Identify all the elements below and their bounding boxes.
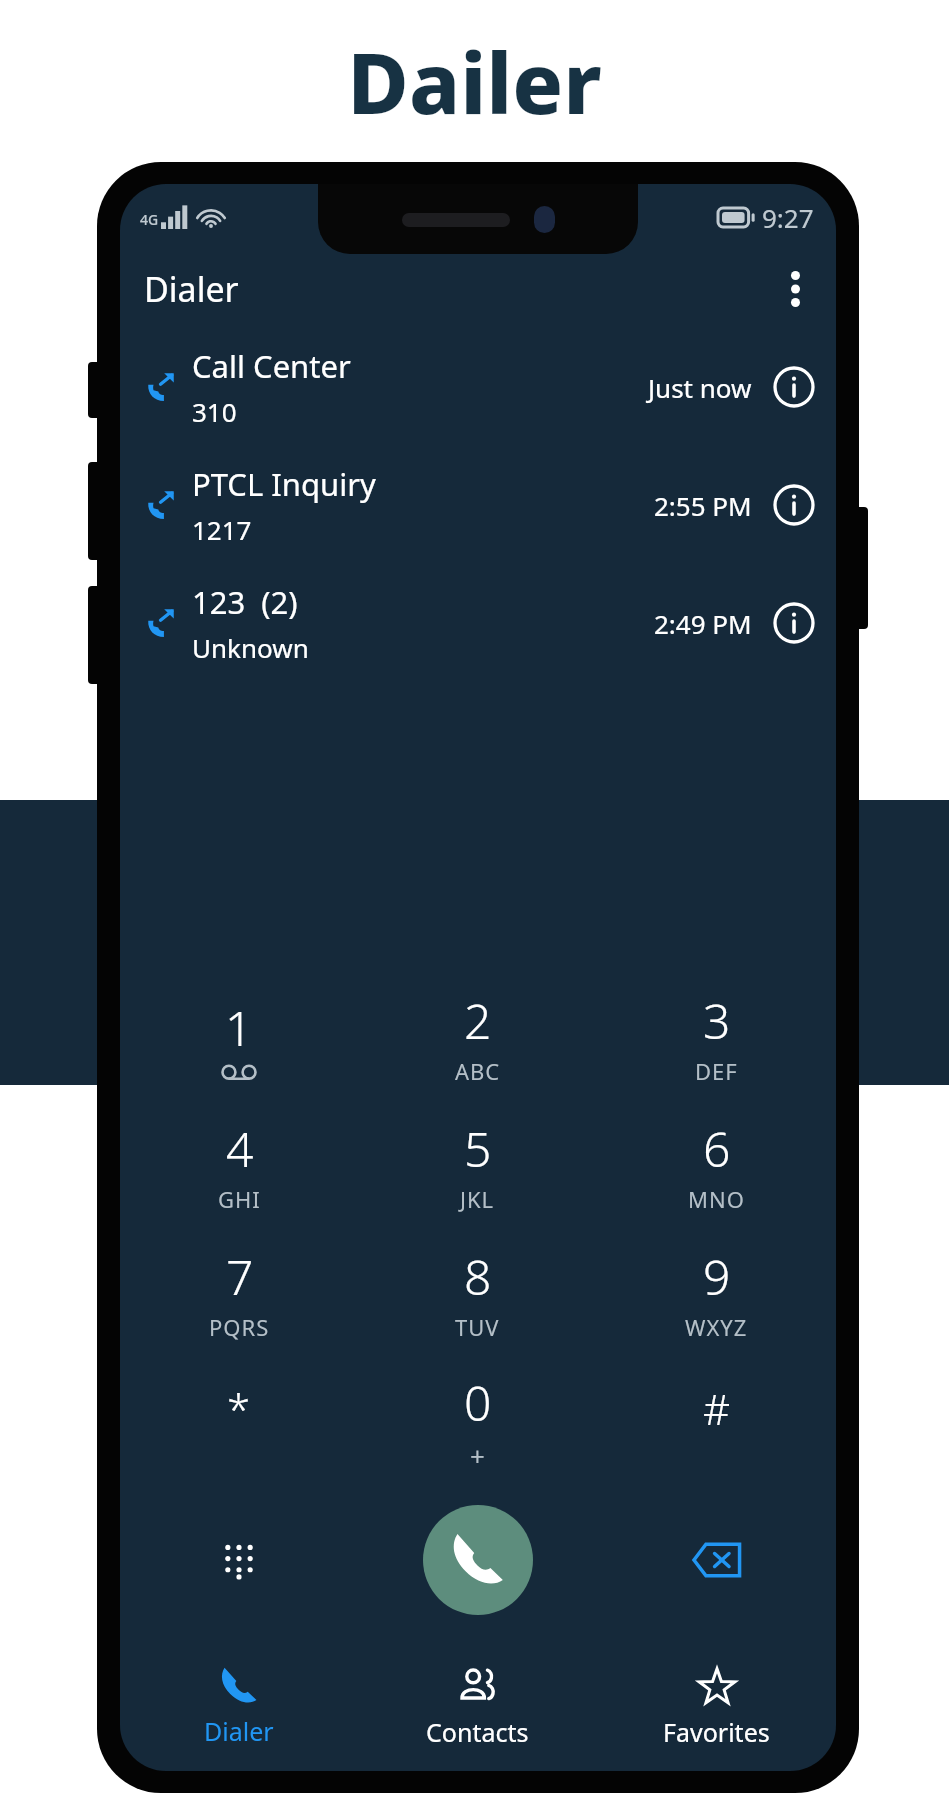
staticText: JKL xyxy=(460,1184,495,1214)
staticText: 1217 xyxy=(192,512,252,547)
button[interactable]: PTCL Inquiry xyxy=(120,446,836,564)
staticText: 123 (2) xyxy=(192,581,298,623)
staticText: 2:49 PM xyxy=(654,606,752,641)
button[interactable]: Backspace xyxy=(597,1485,836,1635)
button[interactable]: # xyxy=(597,1357,836,1485)
staticText: GHI xyxy=(218,1184,261,1214)
staticText: * xyxy=(227,1380,251,1437)
button[interactable]: More options xyxy=(768,262,822,316)
staticText: + xyxy=(470,1438,486,1473)
staticText: Contacts xyxy=(426,1715,529,1749)
staticText: 7 xyxy=(226,1244,254,1309)
button[interactable]: 1 xyxy=(120,973,358,1101)
staticText: 9 xyxy=(703,1244,731,1309)
button[interactable]: * xyxy=(120,1357,358,1485)
staticText: 2 xyxy=(464,988,492,1053)
button[interactable]: 0 xyxy=(358,1357,597,1485)
button[interactable]: Keypad xyxy=(120,1485,358,1635)
staticText: TUV xyxy=(455,1312,500,1342)
button[interactable]: 8 xyxy=(358,1229,597,1357)
staticText: Just now xyxy=(648,370,752,405)
button[interactable]: 9 xyxy=(597,1229,836,1357)
button[interactable]: Call details xyxy=(768,361,820,413)
staticText: MNO xyxy=(688,1184,745,1214)
staticText: PTCL Inquiry xyxy=(192,463,376,505)
button[interactable]: 6 xyxy=(597,1101,836,1229)
button[interactable]: Dialer xyxy=(120,1649,358,1765)
staticText: 6 xyxy=(703,1116,731,1181)
staticText: Dialer xyxy=(144,266,239,312)
button[interactable]: Call details xyxy=(768,479,820,531)
staticText: 9:27 xyxy=(762,200,814,235)
staticText: Dailer xyxy=(347,24,602,138)
button[interactable]: Contacts xyxy=(358,1649,597,1765)
button[interactable]: 123 (2) xyxy=(120,564,836,682)
staticText: Dialer xyxy=(204,1714,274,1748)
staticText: ABC xyxy=(455,1056,501,1086)
staticText: Favorites xyxy=(663,1715,770,1749)
staticText: 8 xyxy=(464,1244,492,1309)
button[interactable]: 4 xyxy=(120,1101,358,1229)
staticText: Call Center xyxy=(192,345,351,387)
button[interactable]: Call Center xyxy=(120,328,836,446)
staticText: 1 xyxy=(225,995,253,1060)
button[interactable]: 5 xyxy=(358,1101,597,1229)
staticText: 2:55 PM xyxy=(654,488,752,523)
staticText: Unknown xyxy=(192,630,309,665)
staticText: # xyxy=(703,1380,731,1437)
staticText: 3 xyxy=(703,988,731,1053)
button[interactable]: Favorites xyxy=(597,1649,836,1765)
staticText: 0 xyxy=(464,1370,492,1435)
button[interactable]: Call details xyxy=(768,597,820,649)
staticText: PQRS xyxy=(209,1312,270,1342)
staticText: WXYZ xyxy=(685,1312,748,1342)
staticText: 4G xyxy=(140,210,159,229)
button[interactable]: 2 xyxy=(358,973,597,1101)
button[interactable]: 7 xyxy=(120,1229,358,1357)
button[interactable]: 3 xyxy=(597,973,836,1101)
staticText: 4 xyxy=(226,1116,254,1181)
staticText: DEF xyxy=(695,1056,738,1086)
staticText: 310 xyxy=(192,394,237,429)
button[interactable]: Call xyxy=(423,1505,533,1615)
staticText: 5 xyxy=(464,1116,492,1181)
